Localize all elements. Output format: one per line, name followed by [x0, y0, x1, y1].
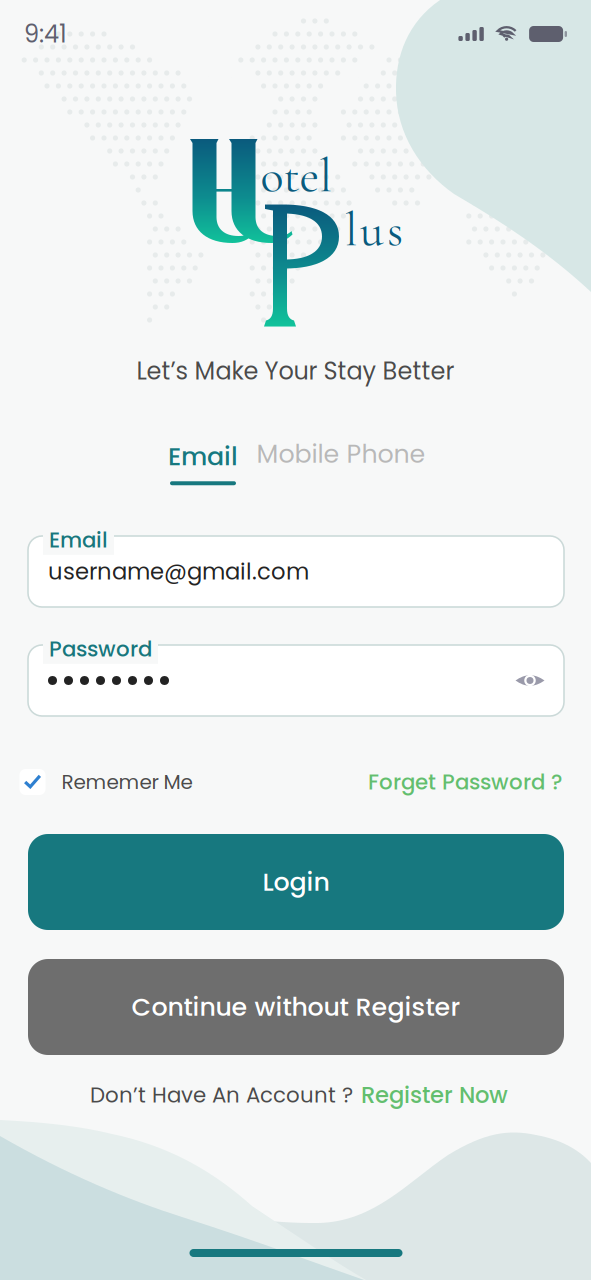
button[interactable]: Show password	[510, 666, 550, 694]
staticText: 9:41	[24, 17, 67, 51]
staticText: Continue without Register	[131, 989, 460, 1025]
button[interactable]: Email	[168, 439, 238, 485]
staticText: Email	[168, 439, 238, 474]
staticText: otel	[260, 147, 331, 205]
staticText: Email	[49, 525, 108, 555]
staticText: Login	[262, 864, 329, 900]
button[interactable]: Rememer Me	[19, 768, 192, 796]
staticText: Password	[49, 634, 152, 664]
button[interactable]: Forget Password ?	[368, 767, 562, 797]
staticText: lus	[345, 201, 403, 259]
staticText: Register Now	[361, 1079, 508, 1111]
staticText: Mobile Phone	[256, 436, 425, 472]
staticText: Forget Password ?	[368, 767, 562, 797]
button[interactable]: Mobile Phone	[256, 436, 425, 472]
staticText: Let’s Make Your Stay Better	[136, 354, 454, 388]
staticText: Don’t Have An Account ?	[90, 1080, 353, 1110]
button[interactable]: Register Now	[361, 1079, 508, 1111]
button[interactable]: Continue without Register	[28, 959, 564, 1055]
staticText: username@gmail.com	[48, 556, 309, 587]
button[interactable]: Login	[28, 834, 564, 930]
staticText: Rememer Me	[61, 768, 192, 796]
